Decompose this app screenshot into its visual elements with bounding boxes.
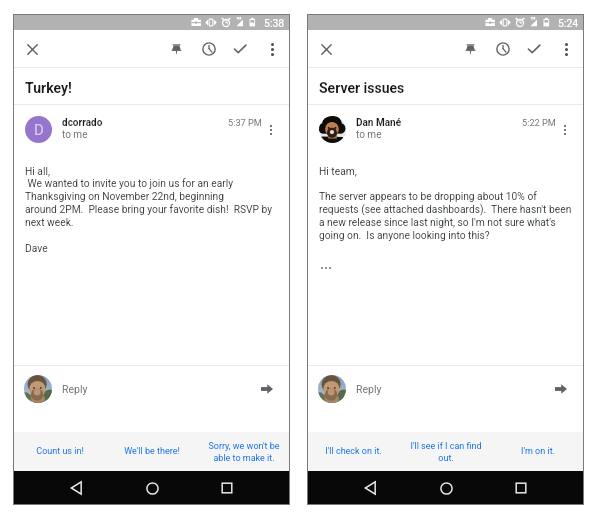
button[interactable]: Close — [314, 37, 338, 61]
staticText: I'll see if I can find out. — [404, 441, 488, 463]
staticText: Sorry, we won't be able to make it. — [202, 441, 286, 463]
staticText: Hi team, The server appears to be droppi… — [319, 165, 572, 242]
staticText: We'll be there! — [124, 446, 180, 457]
button[interactable]: Pin — [164, 37, 188, 61]
button[interactable]: Message options — [263, 122, 279, 138]
button[interactable]: Pin — [458, 37, 482, 61]
button[interactable]: Reply — [13, 366, 290, 412]
button[interactable]: Back — [63, 475, 89, 501]
button[interactable]: Snooze — [197, 37, 221, 61]
button[interactable]: Snooze — [491, 37, 515, 61]
button[interactable]: Recents — [508, 475, 534, 501]
staticText: dcorrado — [62, 117, 103, 129]
button[interactable]: Sorry, we won't be able to make it. — [198, 432, 290, 471]
staticText: to me — [62, 129, 88, 141]
staticText: Reply — [356, 383, 382, 395]
other: Send — [553, 381, 569, 397]
other: Send — [259, 381, 275, 397]
staticText: Dan Mané — [356, 117, 402, 129]
button[interactable]: Reply — [307, 366, 584, 412]
button[interactable]: Message options — [557, 122, 573, 138]
button[interactable]: Home — [139, 475, 165, 501]
staticText: 5:22 PM — [522, 117, 556, 128]
button[interactable]: I'll check on it. — [307, 432, 400, 471]
staticText: 5:37 PM — [228, 117, 262, 128]
button[interactable]: Count us in! — [13, 432, 106, 471]
button[interactable]: We'll be there! — [106, 432, 198, 471]
button[interactable]: Back — [357, 475, 383, 501]
staticText: Server issues — [319, 80, 405, 96]
button[interactable]: Home — [433, 475, 459, 501]
button[interactable]: I'll see if I can find out. — [400, 432, 492, 471]
button[interactable]: Recents — [214, 475, 240, 501]
button[interactable]: Done — [228, 37, 252, 61]
staticText: 5:38 — [264, 17, 285, 29]
staticText: Count us in! — [36, 446, 84, 457]
staticText: Hi all, We wanted to invite you to join … — [25, 165, 273, 255]
staticText: Reply — [62, 383, 88, 395]
button[interactable]: Done — [522, 37, 546, 61]
button[interactable]: More options — [554, 37, 578, 61]
button[interactable]: More options — [260, 37, 284, 61]
button[interactable]: I'm on it. — [492, 432, 584, 471]
staticText: to me — [356, 129, 382, 141]
button[interactable]: Close — [20, 37, 44, 61]
staticText: Turkey! — [25, 80, 72, 96]
staticText: D — [34, 121, 44, 139]
staticText: I'll check on it. — [325, 446, 382, 457]
staticText: I'm on it. — [521, 446, 555, 457]
button[interactable]: Show trimmed content — [321, 267, 331, 269]
staticText: 5:24 — [558, 17, 579, 29]
